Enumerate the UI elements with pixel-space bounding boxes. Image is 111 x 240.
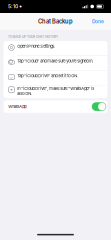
staticText: Tap "iCloud" and make sure you're signed… [17, 59, 93, 63]
staticText: also ON. [17, 91, 32, 96]
button[interactable]: In "iCloud Drive", make sure "WhatsApp" … [4, 85, 107, 98]
button[interactable]: WhatsApp [4, 100, 107, 113]
staticText: Done [92, 19, 104, 24]
staticText: Open iPhone Settings. [17, 44, 55, 49]
button[interactable]: Open iPhone Settings. [4, 41, 107, 56]
staticText: TO BACK UP YOUR CHAT HISTORY [8, 35, 58, 39]
button[interactable]: Tap "iCloud" and make sure you're signed… [4, 56, 107, 71]
staticText: 5:10 [8, 4, 18, 9]
staticText: Tap "iCloud Drive" and set it to ON. [17, 73, 78, 78]
button[interactable]: Done [90, 17, 106, 26]
staticText: Chat Backup [38, 18, 73, 25]
staticText: WhatsApp [8, 104, 26, 109]
staticText: In "iCloud Drive", make sure "WhatsApp" … [17, 86, 94, 91]
button[interactable]: Tap "iCloud Drive" and set it to ON. [4, 71, 107, 85]
